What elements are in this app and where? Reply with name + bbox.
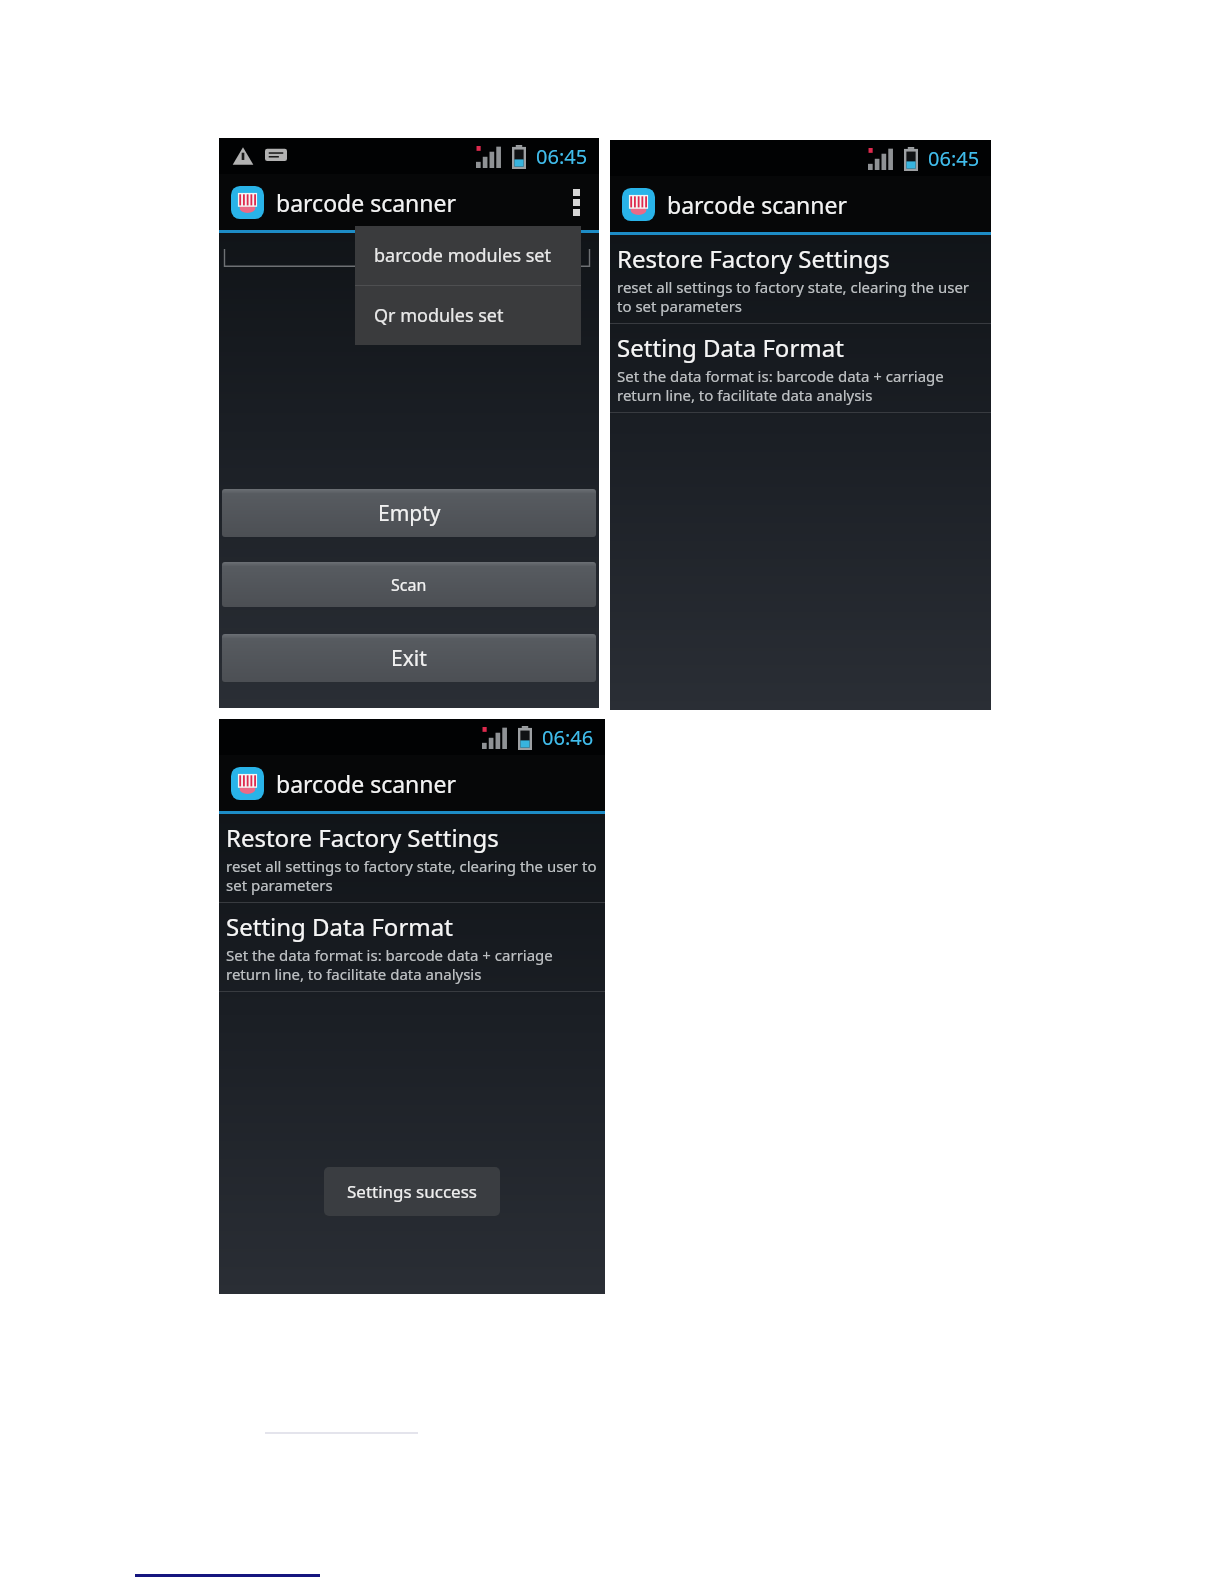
staticText: Exit (391, 644, 427, 673)
staticText: Restore Factory Settings (617, 242, 890, 275)
staticText: Qr modules set (374, 303, 504, 328)
staticText: Empty (378, 499, 441, 528)
staticText: Scan (391, 574, 427, 596)
button[interactable]: barcode modules set (355, 226, 581, 285)
button[interactable]: Setting Data Format (610, 324, 991, 412)
button[interactable]: Scan (222, 562, 596, 607)
button[interactable]: Empty (222, 489, 596, 537)
staticText: barcode modules set (374, 243, 551, 268)
staticText: Setting Data Format (617, 331, 844, 364)
button[interactable]: More options (554, 174, 599, 230)
button[interactable]: Qr modules set (355, 286, 581, 345)
button[interactable]: Restore Factory Settings (610, 235, 991, 323)
staticText: Set the data format is: barcode data + c… (617, 366, 984, 405)
staticText: barcode scanner (276, 768, 456, 799)
button[interactable]: Setting Data Format (219, 903, 605, 991)
staticText: Settings success (347, 1180, 477, 1203)
staticText: 06:45 (928, 145, 980, 172)
staticText: 06:45 (536, 143, 588, 170)
button[interactable]: Restore Factory Settings (219, 814, 605, 902)
staticText: Set the data format is: barcode data + c… (226, 945, 598, 984)
staticText: Restore Factory Settings (226, 821, 499, 854)
button[interactable]: Exit (222, 634, 596, 682)
staticText: reset all settings to factory state, cle… (617, 277, 984, 316)
staticText: 06:46 (542, 724, 594, 751)
staticText: barcode scanner (276, 187, 456, 218)
staticText: Setting Data Format (226, 910, 453, 943)
staticText: barcode scanner (667, 189, 847, 220)
staticText: reset all settings to factory state, cle… (226, 856, 598, 895)
